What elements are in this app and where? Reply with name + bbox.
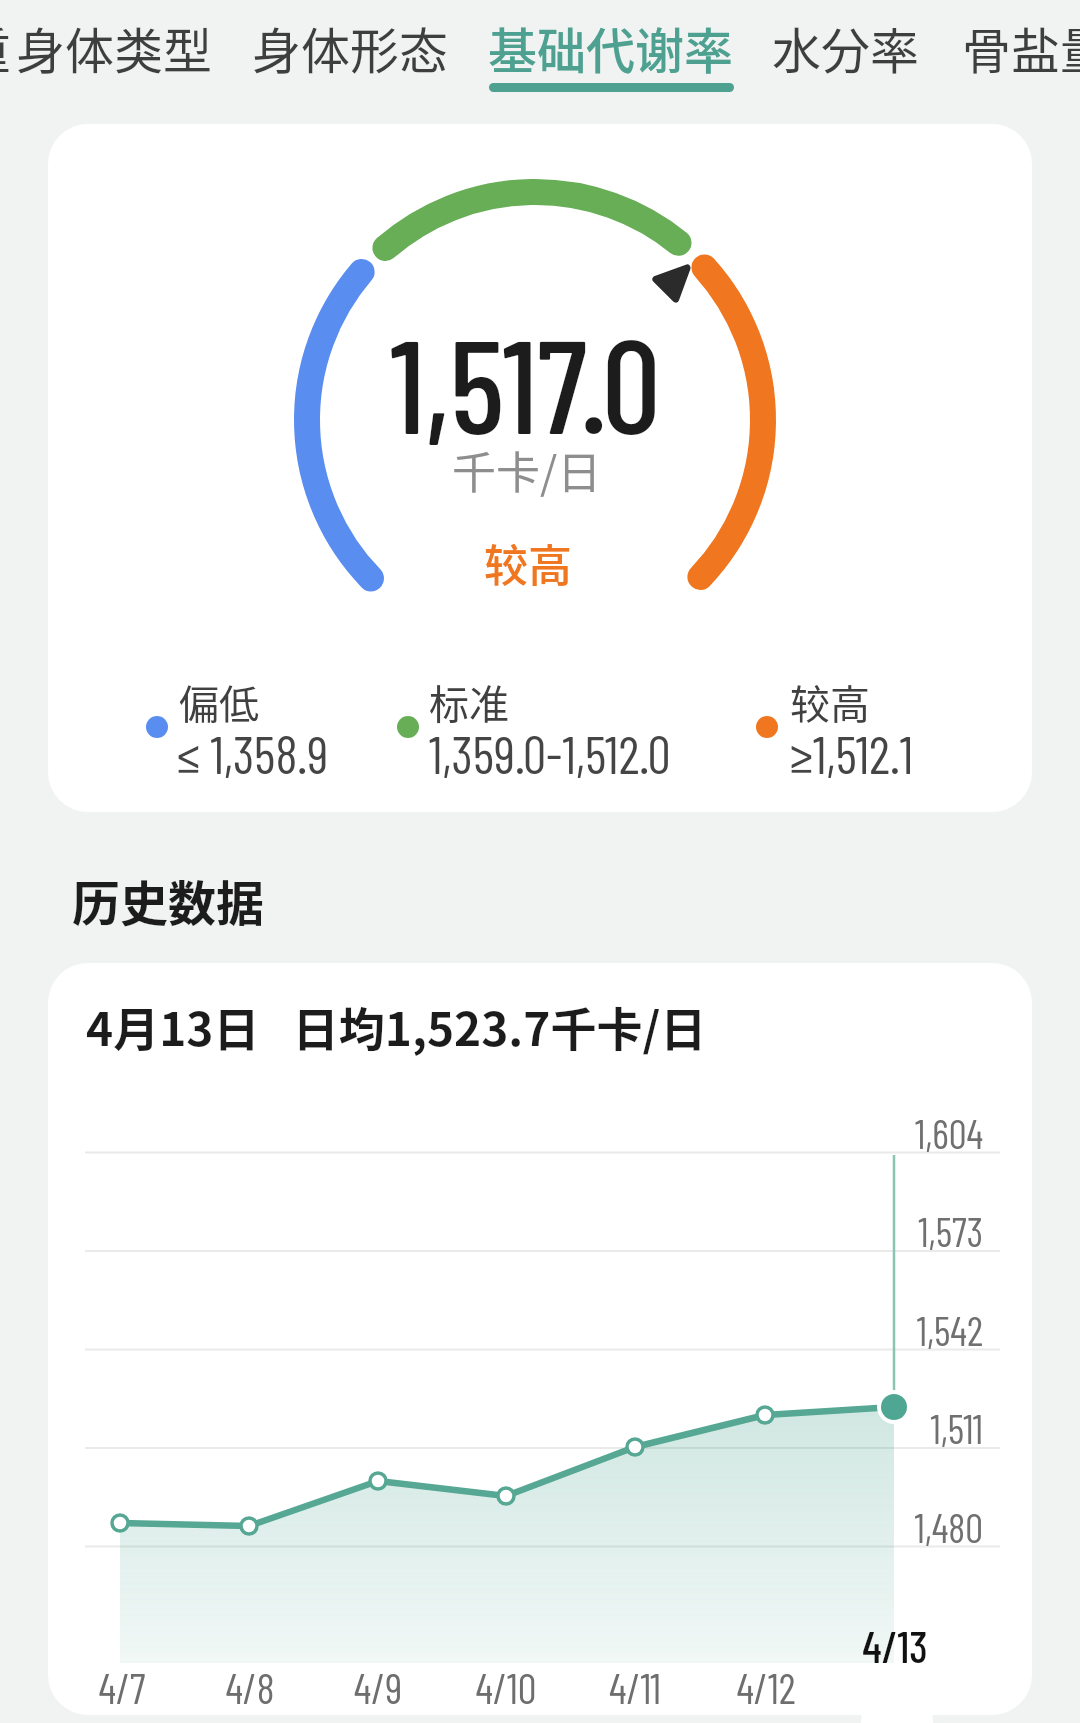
button[interactable]: 骨盐量 xyxy=(962,12,1080,83)
staticText: 骨盐量 xyxy=(962,12,1080,83)
staticText: 较高 xyxy=(790,673,870,731)
staticText: 4/11 xyxy=(575,1662,695,1712)
staticText: 较高 xyxy=(484,531,572,595)
staticText: 偏低 xyxy=(179,673,259,731)
button[interactable]: 身体类型 xyxy=(16,12,213,83)
button[interactable]: 身体形态 xyxy=(252,12,449,83)
staticText: 4月13日 日均1,523.7千卡/日 xyxy=(86,993,707,1060)
staticText: 4/12 xyxy=(706,1662,826,1712)
button[interactable]: 基础代谢率 xyxy=(488,12,734,83)
staticText: 身体类型 xyxy=(16,12,213,83)
staticText: 1,359.0-1,512.0 xyxy=(429,722,671,784)
staticText: ≤ 1,358.9 xyxy=(177,722,329,784)
staticText: 4/13 xyxy=(835,1619,955,1672)
staticText: 1,517.0 xyxy=(390,303,661,460)
button[interactable]: 水分率 xyxy=(772,12,920,83)
staticText: 千卡/日 xyxy=(452,438,602,502)
staticText: 1,604 xyxy=(863,1109,983,1157)
staticText: 4/10 xyxy=(446,1662,566,1712)
staticText: ≥1,512.1 xyxy=(790,722,914,784)
staticText: 4/9 xyxy=(318,1662,438,1712)
staticText: 4/8 xyxy=(190,1662,310,1712)
staticText: 标准 xyxy=(429,673,509,731)
staticText: 1,480 xyxy=(863,1503,983,1551)
staticText: 身体形态 xyxy=(252,12,449,83)
staticText: 1,511 xyxy=(863,1404,983,1452)
staticText: 重 xyxy=(0,12,12,83)
staticText: 1,542 xyxy=(863,1306,983,1354)
staticText: 水分率 xyxy=(772,12,920,83)
staticText: 基础代谢率 xyxy=(488,12,734,83)
staticText: 4/7 xyxy=(62,1662,182,1712)
staticText: 历史数据 xyxy=(72,865,265,935)
staticText: 1,573 xyxy=(863,1207,983,1255)
